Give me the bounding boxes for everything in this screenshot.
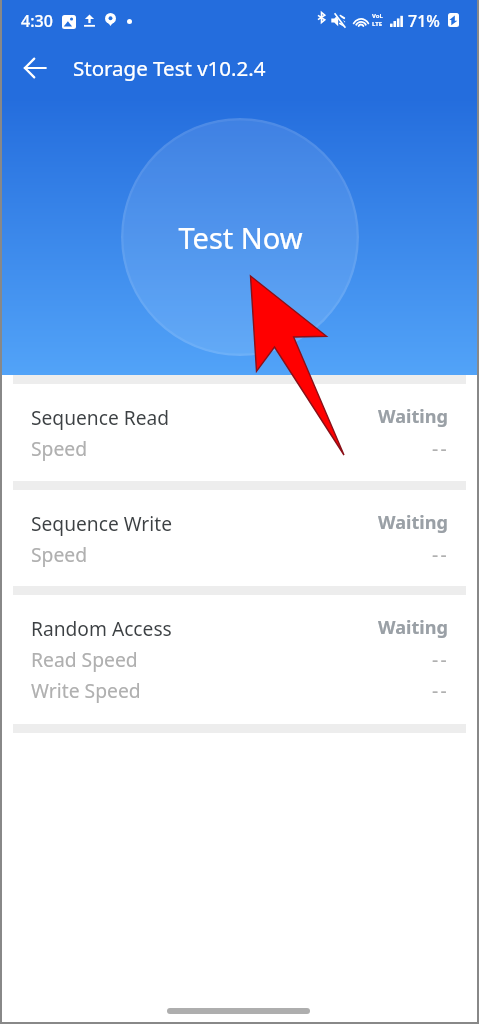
staticText: Speed bbox=[31, 435, 88, 461]
staticText: Waiting bbox=[378, 404, 448, 429]
button[interactable]: Sequence Write bbox=[0, 490, 479, 586]
staticText: -- bbox=[432, 435, 449, 461]
staticText: -- bbox=[432, 541, 449, 567]
staticText: Test Now bbox=[178, 218, 303, 257]
staticText: Speed bbox=[31, 541, 88, 567]
staticText: Storage Test v10.2.4 bbox=[73, 54, 266, 82]
staticText: Read Speed bbox=[31, 646, 138, 672]
staticText: 4:30 bbox=[21, 10, 53, 32]
button[interactable]: Random Access bbox=[0, 595, 479, 724]
staticText: Sequence Write bbox=[31, 510, 172, 536]
staticText: Sequence Read bbox=[31, 404, 170, 430]
staticText: Waiting bbox=[378, 615, 448, 640]
staticText: Waiting bbox=[378, 510, 448, 535]
staticText: -- bbox=[432, 677, 449, 703]
staticText: VoL bbox=[372, 12, 383, 20]
staticText: 71% bbox=[408, 10, 440, 32]
staticText: Write Speed bbox=[31, 677, 141, 703]
button[interactable]: Test Now bbox=[121, 118, 359, 356]
button[interactable]: Back bbox=[11, 44, 59, 92]
staticText: -- bbox=[432, 646, 449, 672]
staticText: LTE bbox=[372, 20, 383, 28]
staticText: Random Access bbox=[31, 615, 172, 641]
button[interactable]: Sequence Read bbox=[0, 384, 479, 481]
